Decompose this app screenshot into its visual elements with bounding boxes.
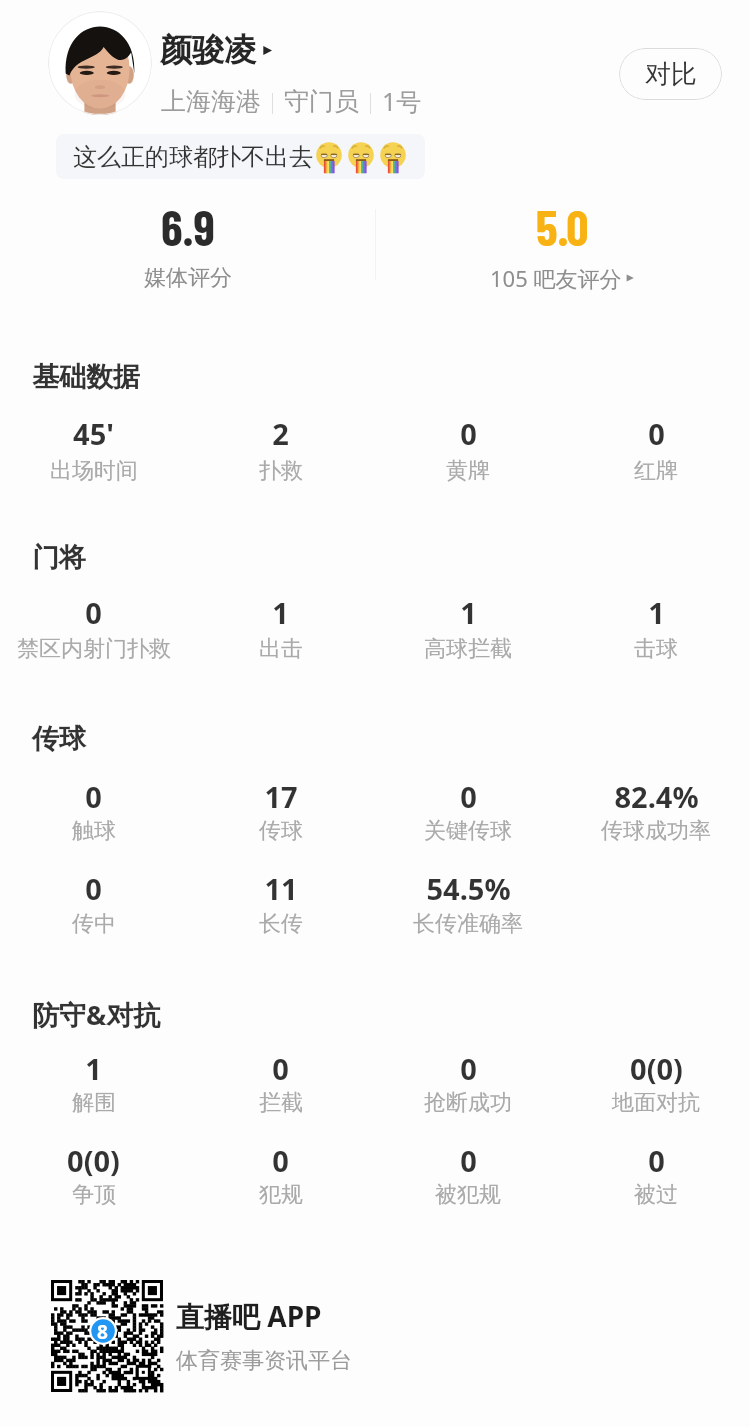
staticText: 关键传球 xyxy=(424,817,512,845)
staticText: 1号 xyxy=(382,84,422,118)
button[interactable]: 颜骏凌 xyxy=(160,30,275,70)
button[interactable]: 0 xyxy=(374,1141,562,1209)
staticText: 6.9 xyxy=(161,197,215,256)
staticText: 触球 xyxy=(72,817,116,845)
button[interactable]: 2 xyxy=(187,414,374,485)
button[interactable]: 1 xyxy=(374,593,562,663)
staticText: 0 xyxy=(460,414,477,453)
button[interactable]: 0 xyxy=(187,1141,374,1209)
staticText: 传球 xyxy=(259,817,303,845)
button[interactable]: 1 xyxy=(0,1049,187,1117)
staticText: 抢断成功 xyxy=(424,1089,512,1117)
staticText: 体育赛事资讯平台 xyxy=(176,1347,352,1375)
staticText: 黄牌 xyxy=(446,457,490,485)
staticText: 8 xyxy=(97,1319,108,1342)
staticText: 0 xyxy=(460,1141,477,1180)
button[interactable]: 对比 xyxy=(619,48,722,100)
staticText: 争顶 xyxy=(72,1181,116,1209)
button[interactable]: 0 xyxy=(187,1049,374,1117)
staticText: 1 xyxy=(648,593,665,632)
staticText: 0(0) xyxy=(67,1141,120,1180)
button[interactable]: 45' xyxy=(0,414,187,485)
staticText: 高球拦截 xyxy=(424,635,512,663)
staticText: 长传 xyxy=(259,910,303,938)
staticText: 直播吧 APP xyxy=(176,1297,322,1335)
staticText: 0 xyxy=(272,1141,289,1180)
staticText: 解围 xyxy=(72,1089,116,1117)
staticText: 0 xyxy=(85,777,102,816)
button[interactable]: QR code xyxy=(51,1280,163,1392)
staticText: 拦截 xyxy=(259,1089,303,1117)
button[interactable]: 0 xyxy=(374,1049,562,1117)
staticText: 17 xyxy=(264,777,298,816)
button[interactable]: 0 xyxy=(374,414,562,485)
button[interactable]: 1 xyxy=(187,593,374,663)
button[interactable]: 1 xyxy=(562,593,750,663)
staticText: 对比 xyxy=(645,58,697,91)
button[interactable]: 82.4% xyxy=(562,777,750,845)
staticText: 基础数据 xyxy=(32,360,140,394)
staticText: 犯规 xyxy=(259,1181,303,1209)
staticText: 54.5% xyxy=(426,869,511,908)
staticText: 45' xyxy=(73,414,114,453)
button[interactable]: 0 xyxy=(0,777,187,845)
button[interactable]: 0 xyxy=(374,777,562,845)
staticText: 门将 xyxy=(32,541,86,575)
staticText: 颜骏凌 xyxy=(160,30,256,70)
staticText: 0(0) xyxy=(630,1049,683,1088)
button[interactable]: 5.0 xyxy=(375,197,750,293)
staticText: 105 吧友评分 xyxy=(490,263,622,293)
staticText: 守门员 xyxy=(284,86,359,117)
staticText: 出击 xyxy=(259,635,303,663)
staticText: 防守&对抗 xyxy=(32,996,161,1033)
staticText: 0 xyxy=(85,593,102,632)
button[interactable]: Player photo xyxy=(48,11,152,115)
button[interactable]: 0 xyxy=(562,1141,750,1209)
staticText: 11 xyxy=(264,869,298,908)
button[interactable]: 11 xyxy=(187,869,374,938)
button[interactable]: 0(0) xyxy=(0,1141,187,1209)
staticText: 1 xyxy=(85,1049,102,1088)
button[interactable]: 0(0) xyxy=(562,1049,750,1117)
staticText: 0 xyxy=(648,1141,665,1180)
staticText: 被过 xyxy=(634,1181,678,1209)
staticText: 地面对抗 xyxy=(612,1089,700,1117)
staticText: 击球 xyxy=(634,635,678,663)
staticText: 0 xyxy=(85,869,102,908)
staticText: 1 xyxy=(272,593,289,632)
staticText: 上海海港 xyxy=(161,86,261,117)
staticText: 0 xyxy=(272,1049,289,1088)
button[interactable]: 这么正的球都扑不出去 xyxy=(56,134,425,179)
button[interactable]: 54.5% xyxy=(374,869,562,938)
button[interactable]: 17 xyxy=(187,777,374,845)
button[interactable]: 0 xyxy=(0,869,187,938)
staticText: 5.0 xyxy=(536,197,589,256)
staticText: 传球 xyxy=(32,722,86,756)
staticText: 0 xyxy=(460,1049,477,1088)
staticText: 被犯规 xyxy=(435,1181,501,1209)
staticText: 0 xyxy=(460,777,477,816)
staticText: 出场时间 xyxy=(50,457,138,485)
staticText: 禁区内射门扑救 xyxy=(17,635,171,663)
staticText: 0 xyxy=(648,414,665,453)
staticText: 82.4% xyxy=(614,777,699,816)
button[interactable]: 0 xyxy=(562,414,750,485)
staticText: 长传准确率 xyxy=(413,910,523,938)
staticText: 传球成功率 xyxy=(601,817,711,845)
staticText: 这么正的球都扑不出去 xyxy=(73,142,313,172)
staticText: 红牌 xyxy=(634,457,678,485)
staticText: 传中 xyxy=(72,910,116,938)
button[interactable]: 0 xyxy=(0,593,187,663)
staticText: 2 xyxy=(272,414,289,453)
staticText: 媒体评分 xyxy=(144,264,232,292)
staticText: 扑救 xyxy=(259,457,303,485)
staticText: 1 xyxy=(460,593,477,632)
